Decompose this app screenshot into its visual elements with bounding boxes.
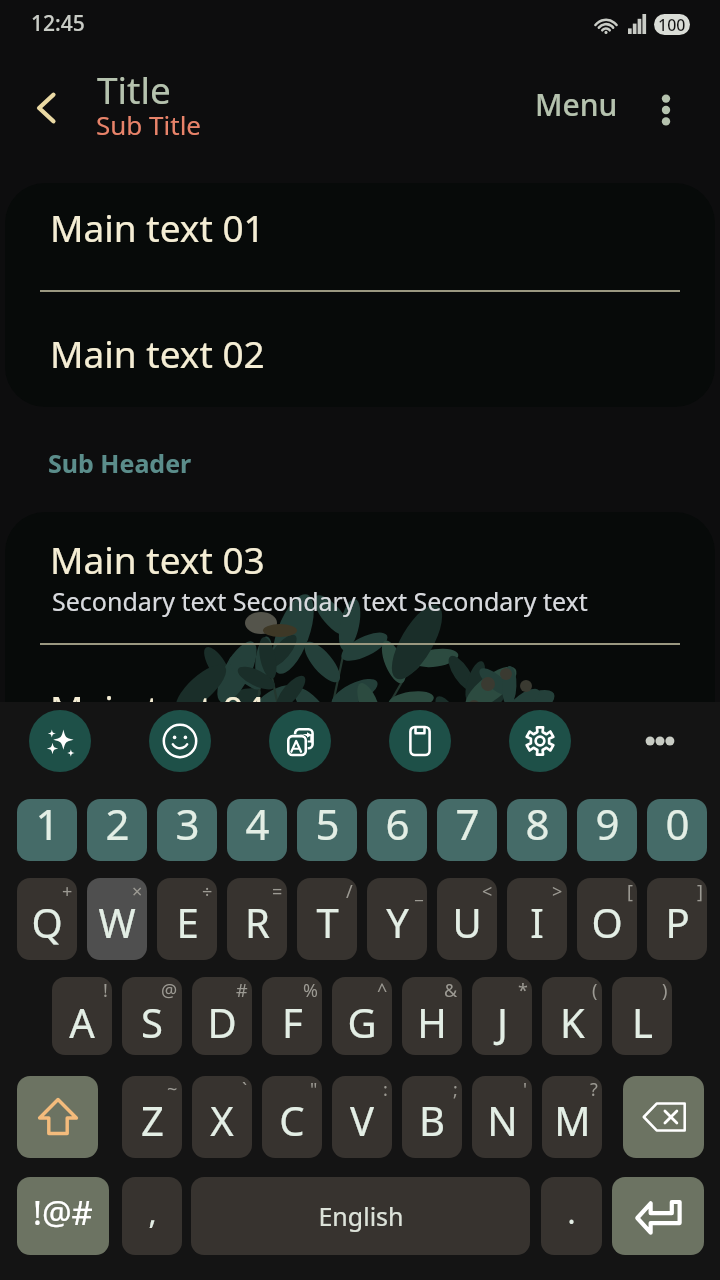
button[interactable]: G bbox=[332, 977, 392, 1055]
button[interactable]: Translate bbox=[269, 710, 331, 772]
staticText: ' bbox=[523, 1077, 528, 1102]
button[interactable]: , bbox=[122, 1177, 182, 1255]
staticText: Y bbox=[386, 895, 409, 949]
staticText: T bbox=[316, 895, 339, 949]
button[interactable]: A bbox=[52, 977, 112, 1055]
button[interactable]: 8 bbox=[507, 799, 567, 861]
staticText: % bbox=[303, 978, 318, 1003]
staticText: N bbox=[487, 1093, 518, 1147]
button[interactable]: 1 bbox=[17, 799, 77, 861]
staticText: + bbox=[62, 879, 73, 904]
button[interactable]: 2 bbox=[87, 799, 147, 861]
button[interactable]: Clipboard bbox=[389, 710, 451, 772]
staticText: Main text 01 bbox=[50, 202, 265, 252]
button[interactable]: O bbox=[577, 878, 637, 960]
staticText: ( bbox=[592, 978, 598, 1003]
staticText: 2 bbox=[105, 799, 130, 852]
button[interactable]: I bbox=[507, 878, 567, 960]
staticText: ? bbox=[590, 1077, 598, 1102]
staticText: @ bbox=[161, 978, 178, 1003]
staticText: V bbox=[350, 1093, 374, 1147]
button[interactable]: . bbox=[541, 1177, 602, 1255]
button[interactable]: Shift bbox=[17, 1076, 98, 1158]
staticText: X bbox=[210, 1093, 234, 1147]
staticText: H bbox=[417, 995, 447, 1049]
staticText: A bbox=[69, 995, 95, 1049]
button[interactable]: Main text 03 bbox=[5, 512, 715, 643]
button[interactable]: U bbox=[437, 878, 497, 960]
button[interactable]: E bbox=[157, 878, 217, 960]
staticText: × bbox=[132, 879, 143, 904]
staticText: 9 bbox=[595, 799, 620, 852]
button[interactable]: 0 bbox=[647, 799, 707, 861]
button[interactable]: Backspace bbox=[623, 1076, 704, 1158]
button[interactable]: L bbox=[612, 977, 672, 1055]
button[interactable]: Magic compose bbox=[29, 710, 91, 772]
button[interactable]: F bbox=[262, 977, 322, 1055]
button[interactable]: !@# bbox=[17, 1177, 109, 1255]
staticText: " bbox=[310, 1077, 318, 1102]
button[interactable]: 9 bbox=[577, 799, 637, 861]
button[interactable]: Main text 04 bbox=[5, 645, 715, 742]
button[interactable]: Main text 01 bbox=[5, 183, 715, 290]
button[interactable]: Main text 02 bbox=[5, 292, 715, 407]
button[interactable]: Back bbox=[23, 81, 77, 135]
button[interactable]: W bbox=[87, 878, 147, 960]
button[interactable]: 4 bbox=[227, 799, 287, 861]
button[interactable]: V bbox=[332, 1076, 392, 1158]
staticText: ~ bbox=[167, 1077, 178, 1102]
staticText: 7 bbox=[455, 799, 480, 852]
button[interactable]: H bbox=[402, 977, 462, 1055]
button[interactable]: English bbox=[191, 1177, 530, 1255]
staticText: ; bbox=[453, 1077, 458, 1102]
staticText: D bbox=[207, 995, 237, 1049]
staticText: 12:45 bbox=[31, 9, 85, 38]
button[interactable]: T bbox=[297, 878, 357, 960]
staticText: 4 bbox=[245, 799, 270, 852]
staticText: R bbox=[245, 895, 270, 949]
button[interactable]: N bbox=[472, 1076, 532, 1158]
button[interactable]: D bbox=[192, 977, 252, 1055]
staticText: Main text 03 bbox=[50, 534, 265, 584]
staticText: 3 bbox=[175, 799, 200, 852]
staticText: Z bbox=[141, 1093, 164, 1147]
staticText: Secondary text Secondary text Secondary … bbox=[52, 584, 588, 618]
staticText: C bbox=[279, 1093, 305, 1147]
button[interactable]: More options bbox=[629, 710, 691, 772]
staticText: 0 bbox=[665, 799, 690, 852]
button[interactable]: 6 bbox=[367, 799, 427, 861]
staticText: & bbox=[444, 978, 458, 1003]
button[interactable]: K bbox=[542, 977, 602, 1055]
button[interactable]: 5 bbox=[297, 799, 357, 861]
button[interactable]: R bbox=[227, 878, 287, 960]
staticText: : bbox=[383, 1077, 388, 1102]
button[interactable]: J bbox=[472, 977, 532, 1055]
button[interactable]: Q bbox=[17, 878, 77, 960]
button[interactable]: More options bbox=[640, 84, 692, 136]
button[interactable]: P bbox=[647, 878, 707, 960]
button[interactable]: C bbox=[262, 1076, 322, 1158]
button[interactable]: Emoji bbox=[149, 710, 211, 772]
staticText: 6 bbox=[385, 799, 410, 852]
button[interactable]: Menu bbox=[524, 81, 628, 127]
staticText: 100 bbox=[658, 14, 686, 35]
staticText: I bbox=[530, 895, 544, 949]
staticText: P bbox=[665, 895, 690, 949]
staticText: [ bbox=[627, 879, 633, 904]
button[interactable]: M bbox=[542, 1076, 602, 1158]
button[interactable]: S bbox=[122, 977, 182, 1055]
staticText: ] bbox=[697, 879, 703, 904]
button[interactable]: 7 bbox=[437, 799, 497, 861]
staticText: / bbox=[346, 879, 353, 904]
button[interactable]: Z bbox=[122, 1076, 182, 1158]
button[interactable]: X bbox=[192, 1076, 252, 1158]
staticText: S bbox=[141, 995, 163, 1049]
staticText: , bbox=[148, 1192, 157, 1233]
button[interactable]: Settings bbox=[509, 710, 571, 772]
staticText: M bbox=[554, 1093, 591, 1147]
button[interactable]: 3 bbox=[157, 799, 217, 861]
button[interactable]: B bbox=[402, 1076, 462, 1158]
button[interactable]: Y bbox=[367, 878, 427, 960]
button[interactable]: Enter bbox=[612, 1177, 704, 1255]
staticText: K bbox=[560, 995, 585, 1049]
